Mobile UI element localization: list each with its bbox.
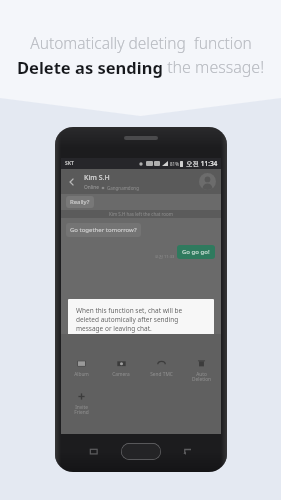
staticText: Auto Deletion (192, 371, 211, 383)
staticText: Kim S.H (84, 173, 110, 183)
staticText: Go together tomorrow? (70, 226, 137, 234)
button[interactable]: Invite Friend (61, 391, 101, 416)
staticText: SKT (65, 160, 74, 167)
staticText: 81% (170, 161, 179, 167)
button[interactable]: Go together tomorrow? (70, 226, 137, 234)
button[interactable]: Home (121, 443, 161, 460)
staticText: Invite Friend (74, 404, 89, 416)
staticText: When this function set, chat will be del… (76, 306, 206, 333)
button[interactable]: Go go go! (182, 248, 210, 256)
staticText: Camera (112, 371, 130, 378)
staticText: Gangnamdong (107, 185, 139, 191)
button[interactable]: Recent apps (89, 446, 100, 457)
staticText: the message! (163, 56, 265, 78)
button[interactable]: Profile (199, 173, 216, 190)
staticText: 오전 11:34 (186, 159, 218, 168)
button[interactable]: Back (182, 446, 193, 457)
staticText: Delete as sending (17, 56, 163, 78)
button[interactable]: Back (66, 176, 78, 188)
button[interactable]: Auto Deletion (181, 358, 221, 383)
staticText: Online (84, 184, 99, 191)
button[interactable]: Camera (101, 358, 141, 378)
staticText: Go go go! (182, 248, 210, 256)
button[interactable]: Album (61, 358, 101, 378)
button[interactable]: Really? (70, 198, 90, 206)
staticText: 오전 11:33 (155, 254, 175, 259)
staticText: Send TMC (150, 371, 173, 378)
staticText: Really? (70, 198, 90, 206)
staticText: Automatically deleting function (30, 32, 252, 53)
staticText: Kim S.H has left the chat room (109, 211, 173, 217)
staticText: Album (74, 371, 89, 378)
button[interactable]: Send TMC (141, 358, 181, 378)
